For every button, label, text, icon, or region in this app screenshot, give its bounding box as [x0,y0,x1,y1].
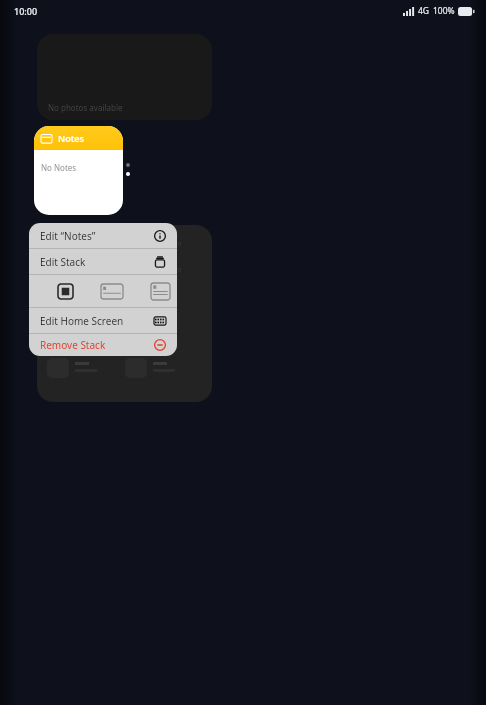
staticText: 0 [167,291,172,301]
button[interactable]: Large widget size [143,280,177,302]
button[interactable]: No photos available [37,34,212,120]
button[interactable]: Medium widget size [95,280,129,302]
staticText: Edit Home Screen [40,314,154,328]
staticText: 10:00 [14,5,38,17]
staticText: 100% [433,5,455,17]
button[interactable]: Remove Stack [29,334,177,356]
staticText: Edit “Notes” [40,229,154,243]
button[interactable]: Small widget size [49,280,81,302]
staticText: 4G [418,5,430,17]
staticText: No photos available [48,102,123,113]
button[interactable]: Edit Home Screen [29,308,177,333]
staticText: 60m [167,239,182,249]
staticText: No Notes [41,162,77,173]
button[interactable]: Edit Stack [29,249,177,274]
button[interactable]: Notes [34,126,123,215]
button[interactable]: Edit “Notes” [29,223,177,248]
staticText: Notes [58,132,85,144]
staticText: 32m [167,265,182,275]
staticText: Remove Stack [40,338,154,352]
staticText: Edit Stack [40,255,154,269]
button[interactable]: 60m [37,225,212,402]
